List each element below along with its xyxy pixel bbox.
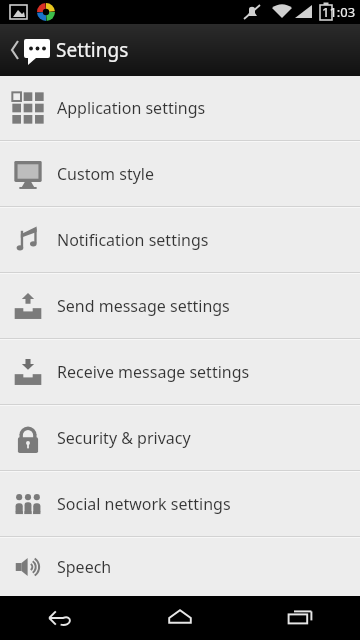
button[interactable]: Social network settings — [0, 472, 360, 536]
button[interactable]: Recent apps — [240, 596, 360, 640]
button[interactable]: Home — [120, 596, 240, 640]
staticText: Application settings — [57, 97, 206, 119]
button[interactable]: Receive message settings — [0, 340, 360, 404]
button[interactable]: Notification settings — [0, 208, 360, 272]
staticText: Send message settings — [57, 295, 230, 317]
button[interactable]: Application settings — [0, 76, 360, 140]
staticText: Receive message settings — [57, 361, 250, 383]
button[interactable]: Back — [0, 596, 120, 640]
button[interactable]: Security & privacy — [0, 406, 360, 470]
button[interactable]: Custom style — [0, 142, 360, 206]
staticText: Social network settings — [57, 493, 231, 515]
staticText: Security & privacy — [57, 427, 191, 449]
staticText: Speech — [57, 556, 112, 578]
staticText: Custom style — [57, 163, 154, 185]
staticText: 11:03 — [322, 3, 356, 21]
staticText: Notification settings — [57, 229, 209, 251]
button[interactable]: Speech — [0, 538, 360, 596]
button[interactable]: Send message settings — [0, 274, 360, 338]
button[interactable]: Navigate up, Settings — [0, 24, 360, 76]
staticText: Settings — [56, 37, 129, 63]
